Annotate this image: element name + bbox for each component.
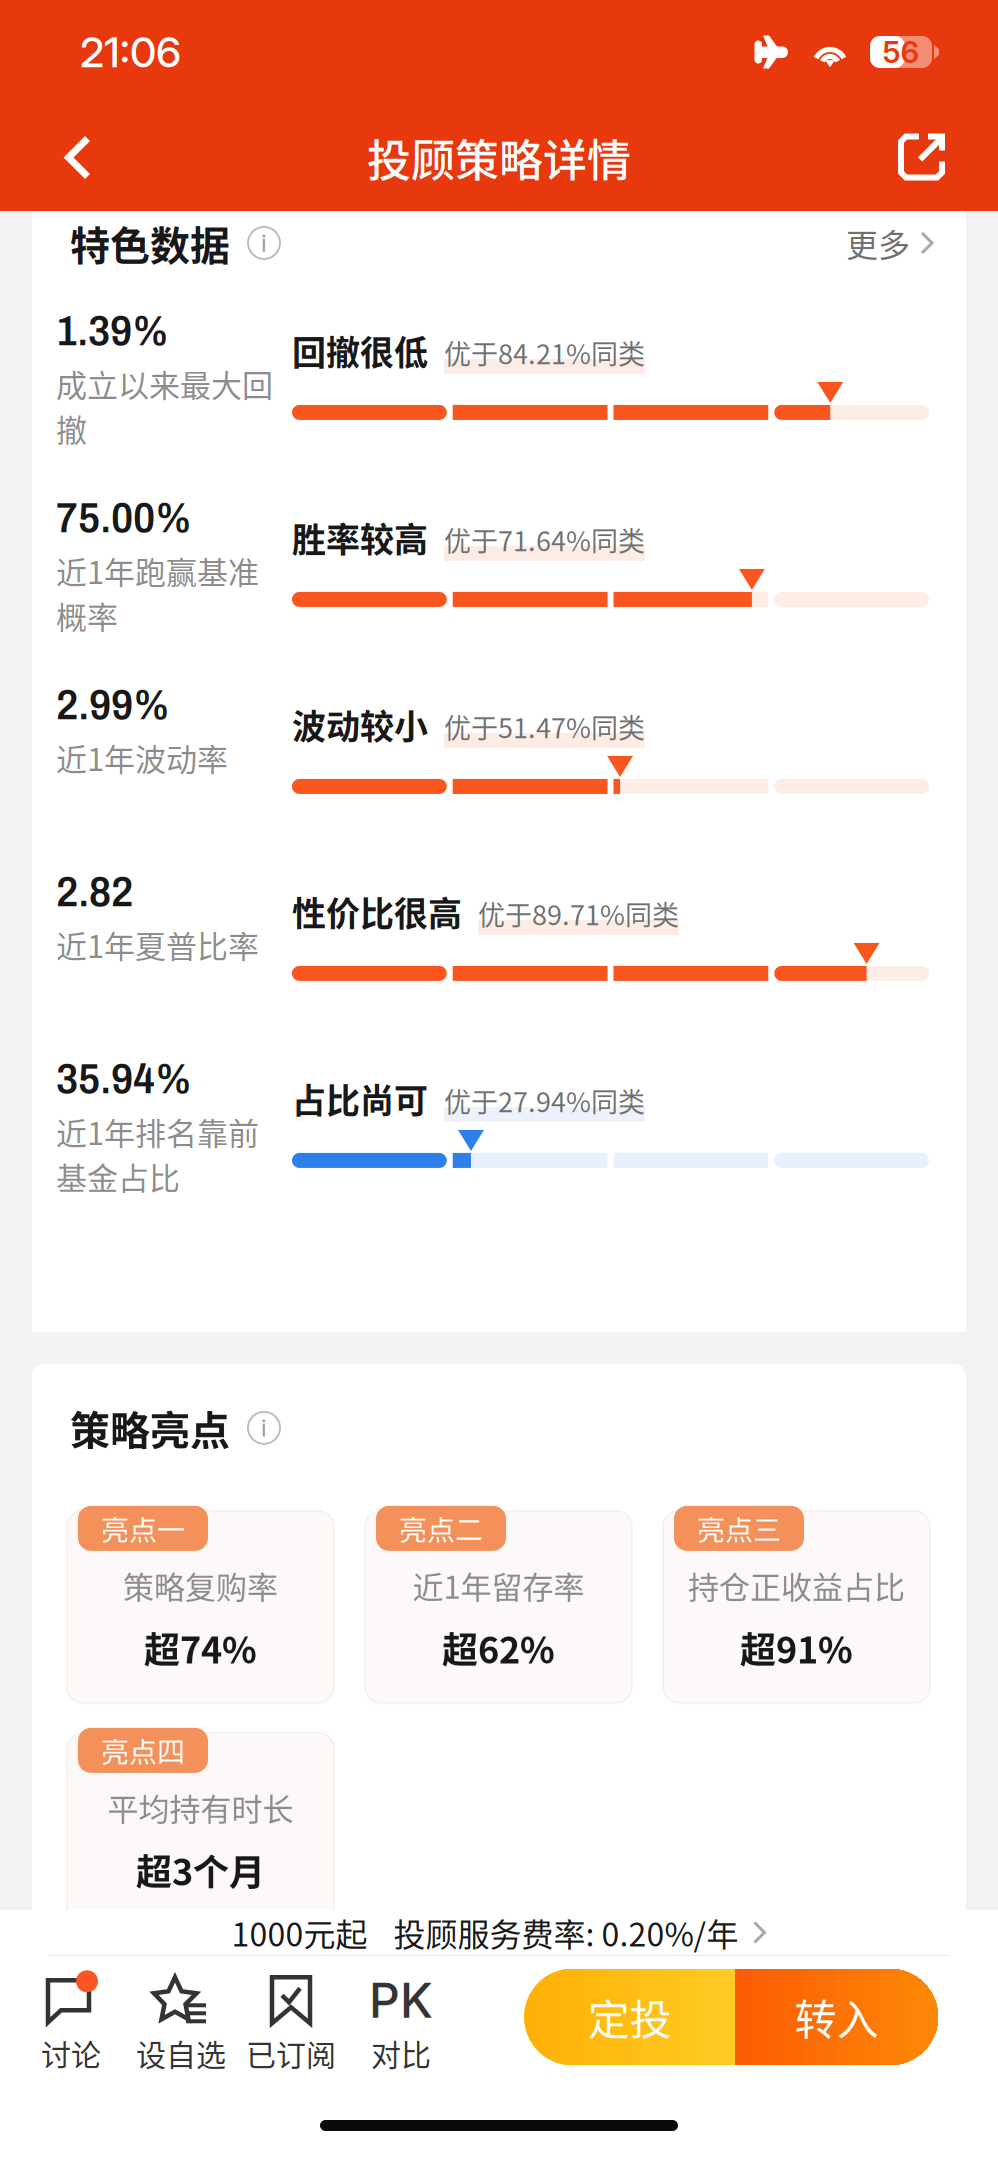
staticText: 定投 bbox=[587, 1987, 671, 2047]
staticText: 21:06 bbox=[80, 27, 181, 77]
staticText: 占比尚可 bbox=[292, 1074, 428, 1123]
staticText: 近1年跑赢基准概率 bbox=[56, 548, 259, 638]
button[interactable]: 转入 bbox=[735, 1969, 938, 2065]
staticText: 超91% bbox=[740, 1622, 853, 1674]
staticText: 更多 bbox=[846, 220, 910, 266]
staticText: 特色数据 bbox=[70, 214, 230, 272]
staticText: 亮点四 bbox=[101, 1730, 185, 1771]
staticText: 策略复购率 bbox=[123, 1563, 278, 1608]
staticText: 策略亮点 bbox=[70, 1399, 230, 1457]
button[interactable]: 返回 bbox=[40, 119, 116, 195]
staticText: 已订阅 bbox=[246, 2031, 336, 2075]
staticText: 成立以来最大回撤 bbox=[56, 361, 273, 451]
staticText: 亮点二 bbox=[399, 1508, 483, 1549]
button[interactable]: 设自选 bbox=[126, 1973, 236, 2075]
staticText: 2.99% bbox=[56, 681, 170, 728]
staticText: 近1年排名靠前基金占比 bbox=[56, 1109, 259, 1199]
button[interactable]: 讨论 bbox=[16, 1973, 126, 2075]
button[interactable]: 1000元起 bbox=[0, 1910, 998, 1955]
staticText: 优于84.21%同类 bbox=[444, 333, 645, 372]
staticText: i bbox=[261, 1413, 267, 1442]
staticText: 持仓正收益占比 bbox=[688, 1563, 905, 1608]
staticText: 性价比很高 bbox=[292, 887, 462, 936]
staticText: 设自选 bbox=[136, 2031, 226, 2075]
button[interactable]: 分享 bbox=[884, 119, 960, 195]
button[interactable]: 更多 bbox=[846, 220, 934, 266]
staticText: 亮点三 bbox=[697, 1508, 781, 1549]
staticText: 优于89.71%同类 bbox=[478, 894, 679, 933]
staticText: 胜率较高 bbox=[292, 513, 428, 562]
staticText: i bbox=[261, 228, 267, 257]
staticText: 对比 bbox=[371, 2031, 431, 2075]
button[interactable]: 已订阅 bbox=[236, 1973, 346, 2075]
staticText: 优于71.64%同类 bbox=[444, 520, 645, 559]
staticText: 优于51.47%同类 bbox=[444, 707, 645, 746]
staticText: 讨论 bbox=[41, 2031, 101, 2075]
staticText: 75.00% bbox=[56, 494, 192, 541]
staticText: 超62% bbox=[442, 1622, 555, 1674]
staticText: 回撤很低 bbox=[292, 326, 428, 375]
staticText: 转入 bbox=[794, 1987, 878, 2047]
staticText: 投顾服务费率: 0.20%/年 bbox=[393, 1909, 738, 1956]
staticText: 平均持有时长 bbox=[107, 1785, 293, 1830]
button[interactable]: PK bbox=[346, 1973, 456, 2075]
staticText: 1000元起 bbox=[231, 1909, 367, 1956]
staticText: 35.94% bbox=[56, 1055, 192, 1102]
staticText: 2.82 bbox=[56, 868, 133, 915]
staticText: 优于27.94%同类 bbox=[444, 1081, 645, 1120]
staticText: 超74% bbox=[144, 1622, 257, 1674]
staticText: 投顾策略详情 bbox=[367, 126, 631, 189]
staticText: 近1年夏普比率 bbox=[56, 922, 259, 967]
staticText: 近1年波动率 bbox=[56, 735, 228, 780]
staticText: 1.39% bbox=[56, 307, 169, 354]
staticText: PK bbox=[369, 1971, 433, 2029]
button[interactable]: 定投 bbox=[524, 1969, 735, 2065]
staticText: 波动较小 bbox=[292, 700, 428, 749]
staticText: 亮点一 bbox=[101, 1508, 185, 1549]
staticText: 超3个月 bbox=[136, 1844, 265, 1896]
staticText: 56 bbox=[882, 34, 919, 70]
staticText: 近1年留存率 bbox=[412, 1563, 584, 1608]
